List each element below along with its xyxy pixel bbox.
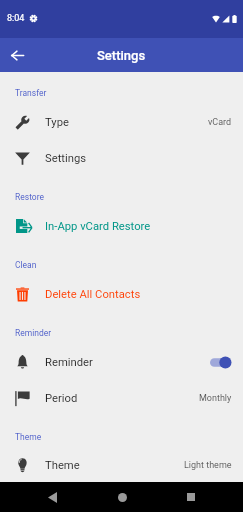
button[interactable]: Recent apps bbox=[179, 485, 203, 509]
staticText: Theme bbox=[45, 459, 184, 472]
button[interactable]: Reminder bbox=[0, 344, 243, 380]
staticText: Theme bbox=[15, 432, 42, 442]
staticText: Settings bbox=[45, 152, 243, 165]
staticText: 8:04 bbox=[7, 13, 25, 24]
button[interactable]: Back bbox=[40, 485, 64, 509]
staticText: Restore bbox=[15, 192, 44, 202]
staticText: Clean bbox=[15, 260, 37, 270]
button[interactable]: Period bbox=[0, 380, 243, 416]
staticText: Reminder bbox=[15, 328, 52, 338]
staticText: Monthly bbox=[199, 393, 232, 404]
button[interactable]: Type bbox=[0, 104, 243, 140]
staticText: Light theme bbox=[184, 460, 232, 471]
button[interactable]: Theme bbox=[0, 448, 243, 482]
button[interactable]: In-App vCard Restore bbox=[0, 208, 243, 244]
button[interactable]: Home bbox=[110, 485, 134, 509]
staticText: Type bbox=[45, 116, 208, 129]
staticText: Period bbox=[45, 392, 199, 405]
button[interactable]: Settings bbox=[0, 140, 243, 176]
staticText: Transfer bbox=[15, 88, 47, 98]
staticText: In-App vCard Restore bbox=[45, 220, 243, 233]
staticText: Settings bbox=[97, 48, 146, 63]
staticText: Delete All Contacts bbox=[45, 288, 243, 301]
staticText: Reminder bbox=[45, 356, 210, 369]
button[interactable]: Back bbox=[5, 43, 30, 68]
button[interactable]: Delete All Contacts bbox=[0, 276, 243, 312]
staticText: vCard bbox=[208, 117, 232, 128]
